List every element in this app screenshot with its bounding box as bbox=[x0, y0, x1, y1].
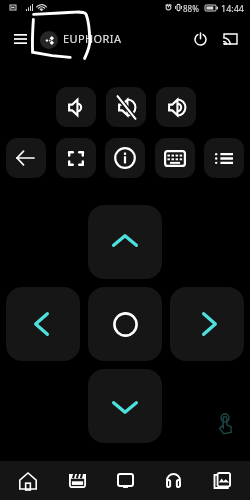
button[interactable]: Power bbox=[186, 25, 214, 53]
button[interactable]: Info bbox=[105, 138, 145, 178]
button[interactable]: Left bbox=[6, 287, 80, 361]
button[interactable]: TV Shows bbox=[105, 461, 145, 500]
staticText: 88% bbox=[183, 3, 199, 14]
button[interactable]: Cast bbox=[216, 25, 244, 53]
button[interactable]: Mute bbox=[106, 87, 146, 127]
button[interactable]: Volume down bbox=[56, 87, 96, 127]
button[interactable]: Home bbox=[8, 461, 48, 500]
button[interactable]: Menu bbox=[6, 25, 34, 53]
button[interactable]: Back bbox=[6, 138, 46, 178]
button[interactable]: Movies bbox=[57, 461, 97, 500]
button[interactable]: Select bbox=[88, 287, 162, 361]
button[interactable]: Pictures bbox=[202, 461, 242, 500]
button[interactable]: Playlist bbox=[204, 138, 244, 178]
button[interactable]: Down bbox=[88, 369, 162, 443]
staticText: EUPHORIA bbox=[63, 31, 122, 46]
button[interactable]: Volume up bbox=[156, 87, 196, 127]
button[interactable]: Keyboard bbox=[155, 138, 195, 178]
button[interactable]: Touchpad bbox=[212, 410, 240, 438]
button[interactable]: Up bbox=[88, 205, 162, 279]
button[interactable]: Right bbox=[170, 287, 244, 361]
staticText: 14:44 bbox=[221, 2, 245, 14]
button[interactable]: Fullscreen bbox=[56, 138, 96, 178]
button[interactable]: Music bbox=[153, 461, 193, 500]
